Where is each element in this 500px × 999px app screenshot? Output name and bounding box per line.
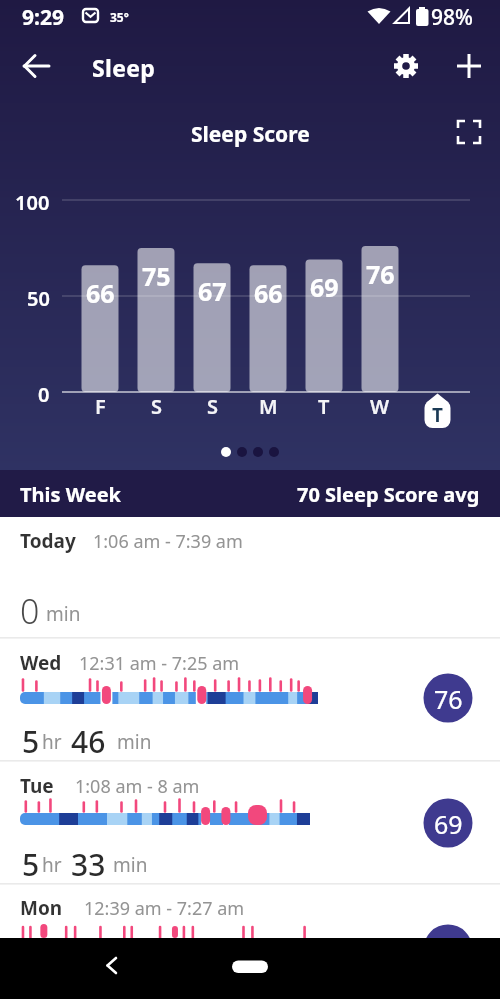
staticText: min <box>46 601 81 627</box>
staticText: 69 <box>310 270 339 304</box>
staticText: min <box>113 852 148 878</box>
staticText: hr <box>42 852 62 878</box>
staticText: 0 <box>20 588 40 634</box>
staticText: 0 <box>38 381 50 408</box>
staticText: 76 <box>366 257 395 291</box>
staticText: 9:29 <box>22 3 64 32</box>
staticText: 66 <box>254 276 283 310</box>
staticText: F <box>95 393 106 420</box>
staticText: 70 Sleep Score avg <box>297 481 480 508</box>
staticText: 35° <box>110 9 129 25</box>
staticText: 66 <box>86 276 115 310</box>
staticText: 1:06 am - 7:39 am <box>93 529 243 554</box>
staticText: 12:39 am - 7:27 am <box>84 896 245 921</box>
staticText: S <box>207 393 218 420</box>
staticText: hr <box>42 729 62 755</box>
staticText: M <box>259 393 278 420</box>
staticText: 1:08 am - 8 am <box>75 774 200 799</box>
staticText: T <box>432 402 443 428</box>
staticText: T <box>318 393 330 420</box>
staticText: 100 <box>15 189 50 216</box>
staticText: 33 <box>71 844 106 885</box>
staticText: Tue <box>20 773 54 799</box>
staticText: 69 <box>434 807 463 841</box>
staticText: 76 <box>434 682 463 716</box>
staticText: Wed <box>20 650 62 676</box>
staticText: Mon <box>20 895 63 921</box>
staticText: Sleep Score <box>191 120 310 149</box>
staticText: This Week <box>20 481 121 508</box>
staticText: W <box>370 393 390 420</box>
staticText: 98% <box>431 3 473 32</box>
staticText: 46 <box>71 721 106 762</box>
staticText: 12:31 am - 7:25 am <box>79 651 240 676</box>
staticText: 5 <box>22 721 40 762</box>
staticText: min <box>117 729 152 755</box>
staticText: 67 <box>198 274 227 308</box>
staticText: 50 <box>27 285 50 312</box>
staticText: S <box>151 393 162 420</box>
staticText: Sleep <box>92 52 156 83</box>
staticText: Today <box>20 528 76 554</box>
staticText: 75 <box>142 259 171 293</box>
staticText: 5 <box>22 844 40 885</box>
